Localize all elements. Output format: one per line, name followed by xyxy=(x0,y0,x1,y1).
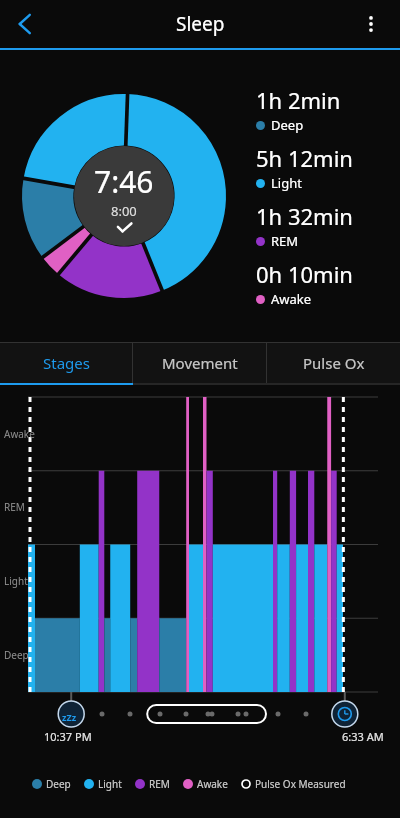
staticText: REM xyxy=(149,777,170,791)
staticText: 10:37 PM xyxy=(44,729,92,744)
staticText: 0h 10min xyxy=(256,259,353,289)
staticText: 8:00 xyxy=(111,202,137,220)
staticText: zZz xyxy=(62,711,77,723)
button[interactable]: Bedtime 10:37 PM xyxy=(44,729,92,744)
staticText: 5h 12min xyxy=(256,143,353,173)
staticText: Light xyxy=(98,777,122,791)
staticText: Sleep xyxy=(176,11,225,37)
staticText: Stages xyxy=(43,353,90,373)
staticText: Awake xyxy=(271,290,312,308)
staticText: Pulse Ox xyxy=(303,353,365,373)
staticText: Awake xyxy=(4,427,35,441)
staticText: Light xyxy=(271,174,302,192)
staticText: Deep xyxy=(271,116,304,134)
staticText: REM xyxy=(271,232,299,250)
button[interactable]: Pulse Ox xyxy=(267,343,400,383)
staticText: 6:33 AM xyxy=(342,729,384,744)
staticText: Awake xyxy=(197,777,228,791)
staticText: 1h 2min xyxy=(256,85,341,115)
staticText: 7:46 xyxy=(94,161,154,202)
button[interactable]: Wake time 6:33 AM xyxy=(342,729,384,744)
button[interactable]: Stages xyxy=(0,343,132,383)
staticText: 1h 32min xyxy=(256,201,353,231)
button[interactable]: Movement xyxy=(133,343,266,383)
staticText: Pulse Ox Measured xyxy=(255,777,346,791)
staticText: Deep xyxy=(4,648,29,662)
button[interactable]: More options xyxy=(348,1,394,47)
staticText: Light xyxy=(4,574,28,588)
button[interactable]: Back xyxy=(2,1,48,47)
staticText: Deep xyxy=(46,777,71,791)
staticText: REM xyxy=(4,500,25,514)
staticText: Movement xyxy=(162,353,238,373)
